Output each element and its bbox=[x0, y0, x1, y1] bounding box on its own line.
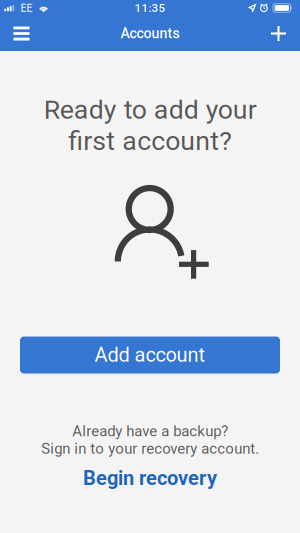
staticText: Accounts bbox=[120, 25, 179, 42]
staticText: EE bbox=[21, 2, 33, 14]
staticText: Begin recovery bbox=[83, 466, 217, 490]
button[interactable]: Add account bbox=[260, 16, 297, 51]
button[interactable]: Begin recovery bbox=[69, 463, 231, 493]
staticText: Already have a backup? Sign in to your r… bbox=[41, 422, 259, 457]
staticText: Ready to add your first account? bbox=[43, 94, 256, 156]
staticText: 11:35 bbox=[134, 1, 165, 15]
staticText: Add account bbox=[94, 343, 205, 367]
button[interactable]: Add account bbox=[20, 336, 280, 373]
button[interactable]: Menu bbox=[3, 16, 40, 51]
